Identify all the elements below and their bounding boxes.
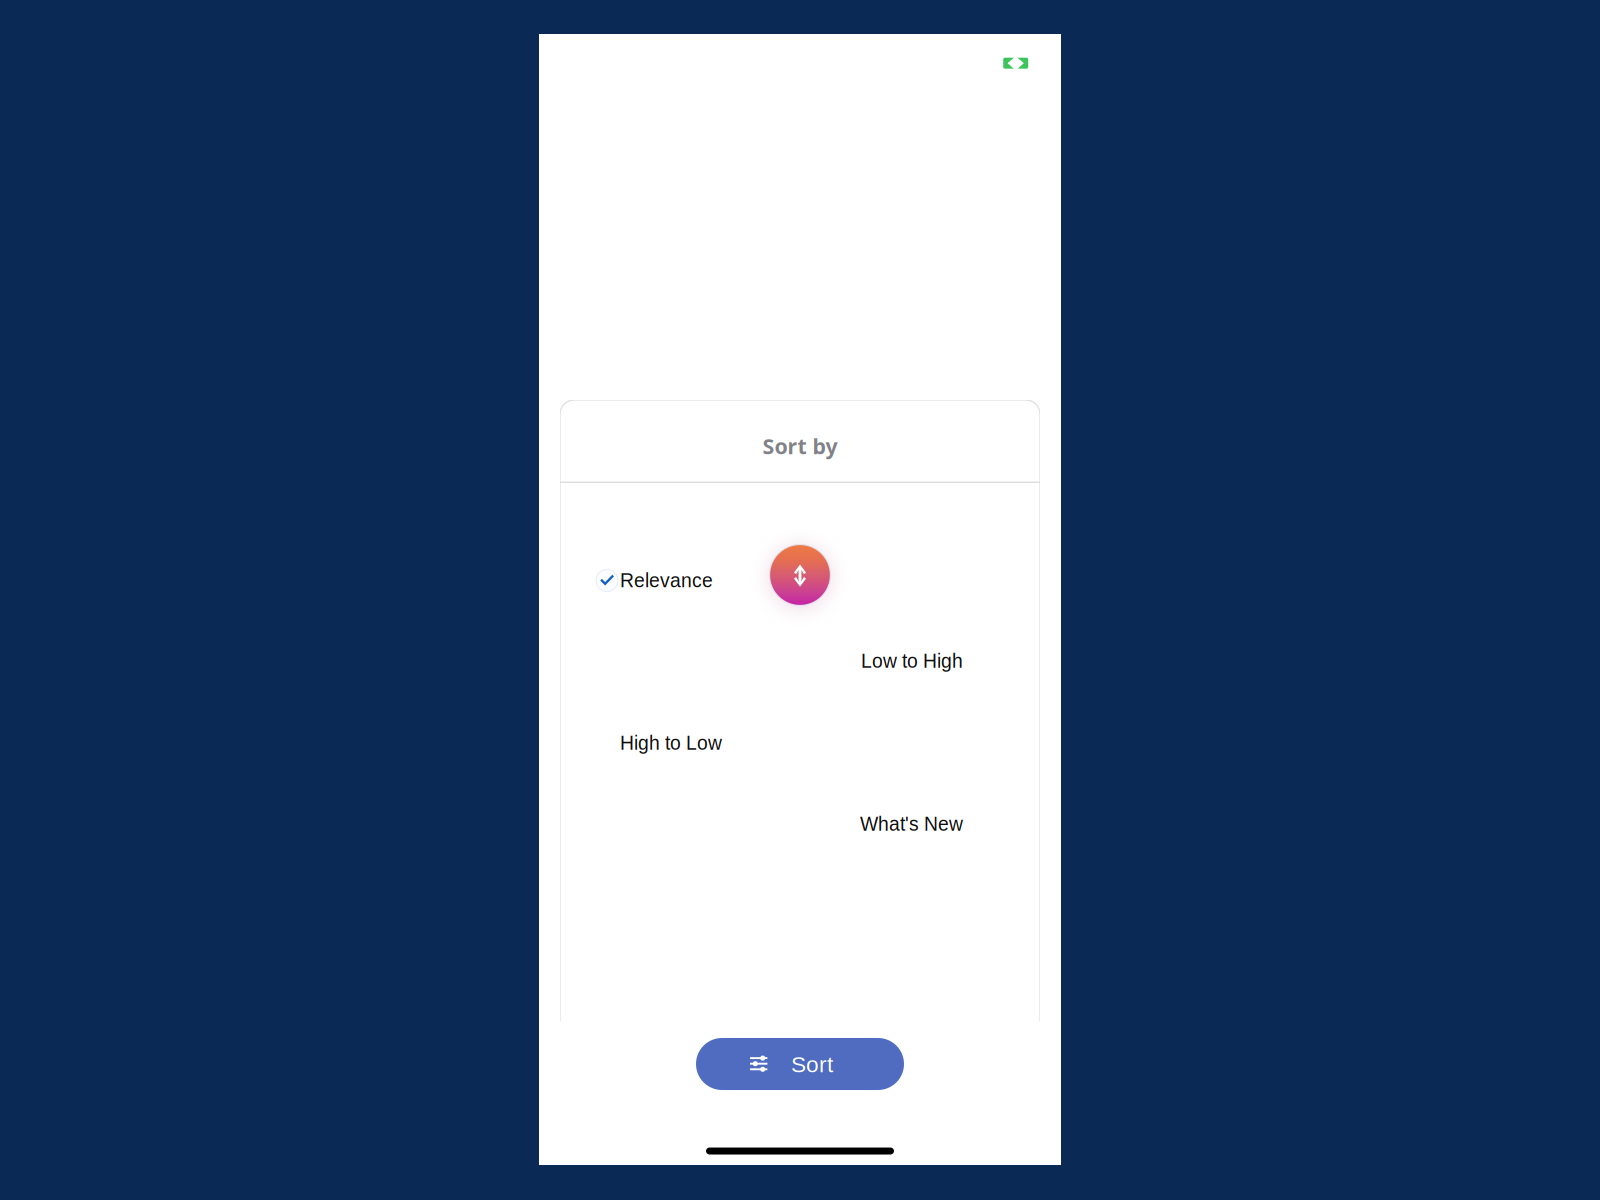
button[interactable]: Low to High bbox=[560, 620, 1040, 701]
button[interactable]: High to Low bbox=[560, 702, 1040, 783]
staticText: High to Low bbox=[620, 732, 722, 754]
button[interactable]: Developer mode bbox=[988, 43, 1044, 83]
staticText: Low to High bbox=[861, 650, 963, 672]
staticText: What's New bbox=[860, 813, 963, 835]
button[interactable]: Sort bbox=[696, 1038, 904, 1090]
button[interactable]: What's New bbox=[560, 783, 1040, 864]
staticText: Sort by bbox=[762, 431, 837, 461]
button[interactable]: Toggle sort direction bbox=[769, 544, 830, 605]
button[interactable]: Relevance bbox=[560, 540, 1040, 621]
staticText: Sort bbox=[791, 1052, 833, 1077]
staticText: Relevance bbox=[620, 570, 713, 591]
